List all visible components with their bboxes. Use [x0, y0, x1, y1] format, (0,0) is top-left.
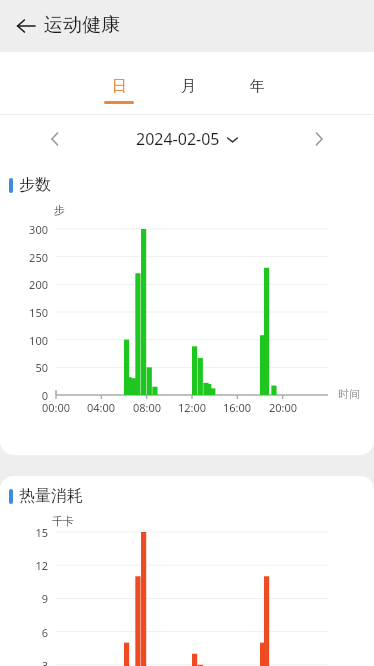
staticText: 月: [181, 77, 196, 96]
button[interactable]: 2024-02-05: [130, 124, 245, 154]
staticText: 2024-02-05: [136, 128, 220, 150]
staticText: 16:00: [223, 400, 252, 415]
staticText: 300: [29, 222, 48, 237]
staticText: 12:00: [178, 400, 207, 415]
staticText: 00:00: [42, 400, 71, 415]
staticText: 步数: [19, 175, 51, 195]
staticText: 100: [29, 333, 48, 348]
staticText: 04:00: [87, 400, 116, 415]
staticText: 250: [29, 250, 48, 265]
button[interactable]: 后一天: [302, 122, 336, 156]
button[interactable]: 年: [237, 52, 277, 114]
button[interactable]: 月: [168, 52, 208, 114]
staticText: 年: [250, 77, 265, 96]
staticText: 6: [41, 625, 48, 640]
button[interactable]: 返回: [8, 8, 44, 44]
staticText: 50: [35, 360, 48, 375]
button[interactable]: 日: [99, 52, 139, 114]
staticText: 200: [29, 277, 48, 292]
staticText: 热量消耗: [19, 486, 83, 506]
staticText: 15: [35, 525, 48, 540]
staticText: 9: [41, 591, 48, 606]
staticText: 千卡: [52, 514, 74, 528]
staticText: 12: [35, 558, 48, 573]
staticText: 日: [112, 77, 127, 96]
staticText: 3: [41, 658, 48, 666]
staticText: 08:00: [133, 400, 162, 415]
staticText: 150: [29, 305, 48, 320]
button[interactable]: 前一天: [38, 122, 72, 156]
staticText: 步: [54, 203, 65, 217]
staticText: 0: [41, 388, 48, 403]
staticText: 运动健康: [44, 13, 120, 37]
staticText: 20:00: [269, 400, 298, 415]
staticText: 时间: [338, 387, 360, 401]
